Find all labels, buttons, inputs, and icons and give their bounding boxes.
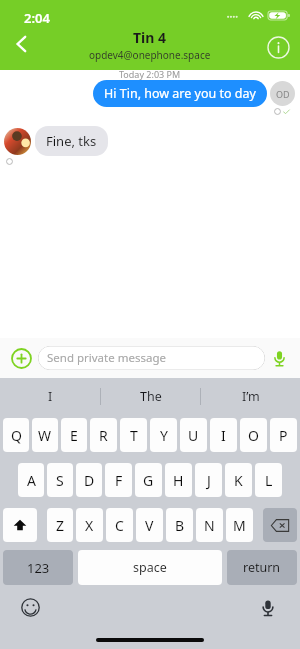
staticText: T [130, 426, 138, 445]
staticText: L [265, 471, 273, 490]
button[interactable]: P [270, 418, 297, 452]
staticText: M [233, 516, 246, 535]
staticText: J [207, 471, 211, 490]
button[interactable]: I’m [201, 378, 300, 415]
button[interactable]: Dictation [255, 595, 280, 620]
staticText: I’m [242, 388, 260, 405]
staticText: N [204, 516, 215, 535]
staticText: A [27, 471, 36, 490]
button[interactable]: W [32, 418, 58, 452]
staticText: Hi Tin, how are you to day [104, 85, 256, 102]
staticText: B [175, 516, 185, 535]
button[interactable]: V [136, 508, 163, 542]
staticText: H [173, 471, 184, 490]
button[interactable]: G [135, 463, 162, 497]
button[interactable]: X [76, 508, 103, 542]
button[interactable]: T [120, 418, 147, 452]
button[interactable]: Send private message [38, 346, 265, 370]
button[interactable]: N [196, 508, 223, 542]
button[interactable]: U [180, 418, 207, 452]
staticText: V [145, 516, 154, 535]
staticText: Q [11, 426, 22, 445]
staticText: C [115, 516, 124, 535]
button[interactable]: The [101, 378, 200, 415]
staticText: U [188, 426, 199, 445]
button[interactable]: Add attachment [8, 345, 34, 371]
staticText: G [143, 471, 154, 490]
button[interactable]: D [76, 463, 102, 497]
staticText: O [248, 426, 259, 445]
staticText: Tin 4 [133, 28, 167, 47]
button[interactable]: M [226, 508, 253, 542]
staticText: I [48, 388, 53, 405]
button[interactable]: E [61, 418, 87, 452]
staticText: return [243, 559, 281, 576]
button[interactable]: F [105, 463, 132, 497]
staticText: E [70, 426, 78, 445]
staticText: Z [56, 516, 65, 535]
button[interactable]: R [90, 418, 117, 452]
button[interactable]: I [0, 378, 100, 415]
staticText: X [85, 516, 94, 535]
staticText: OD [276, 88, 290, 100]
button[interactable]: C [106, 508, 133, 542]
button[interactable]: Q [3, 418, 29, 452]
staticText: 2:04 [24, 9, 50, 27]
staticText: R [99, 426, 108, 445]
button[interactable]: space [78, 550, 222, 585]
staticText: S [56, 471, 64, 490]
staticText: D [84, 471, 95, 490]
button[interactable]: H [165, 463, 192, 497]
button[interactable]: Z [47, 508, 73, 542]
staticText: opdev4@onephone.space [89, 48, 211, 62]
button[interactable]: I [210, 418, 237, 452]
button[interactable]: Emoji [18, 595, 43, 620]
button[interactable]: Back [4, 26, 40, 62]
button[interactable]: Info [262, 31, 294, 63]
button[interactable]: Voice message [266, 345, 292, 371]
button[interactable]: K [225, 463, 252, 497]
staticText: Today 2:03 PM [119, 68, 181, 80]
staticText: I [221, 426, 226, 445]
button[interactable]: A [18, 463, 44, 497]
button[interactable]: O [240, 418, 267, 452]
staticText: P [279, 426, 288, 445]
button[interactable]: L [255, 463, 282, 497]
button[interactable]: 123 [3, 550, 73, 585]
staticText: F [115, 471, 123, 490]
staticText: W [38, 426, 52, 445]
staticText: The [140, 388, 162, 405]
staticText: Send private message [47, 350, 166, 366]
button[interactable]: Backspace [263, 508, 297, 542]
button[interactable]: Y [150, 418, 177, 452]
button[interactable]: Shift [3, 508, 37, 542]
button[interactable]: Fine, tks [35, 126, 108, 156]
staticText: space [133, 559, 167, 576]
staticText: K [234, 471, 243, 490]
staticText: Fine, tks [46, 132, 97, 150]
button[interactable]: S [47, 463, 73, 497]
button[interactable]: B [166, 508, 193, 542]
staticText: 123 [27, 559, 50, 577]
staticText: Y [160, 426, 168, 445]
button[interactable]: Hi Tin, how are you to day [93, 80, 267, 107]
button[interactable]: J [195, 463, 222, 497]
button[interactable]: return [227, 550, 297, 585]
